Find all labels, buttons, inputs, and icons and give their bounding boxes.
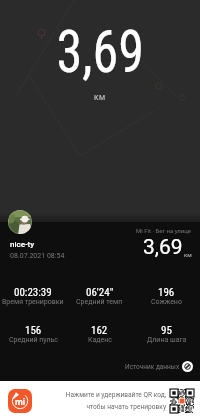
staticText: Длина шага [147, 336, 187, 344]
button[interactable]: 95 [133, 324, 200, 345]
staticText: 08.07.2021 08:54 [10, 252, 65, 260]
staticText: КМ [94, 94, 106, 102]
staticText: 3,69 [143, 235, 183, 260]
staticText: mi [15, 396, 26, 407]
button[interactable]: QR code [170, 389, 194, 413]
staticText: Сожжено [151, 298, 182, 306]
staticText: 00:23:39 [14, 286, 52, 299]
staticText: 95 [161, 324, 172, 337]
staticText: Время тренировки [2, 298, 64, 306]
button[interactable]: 162 [66, 324, 133, 345]
button[interactable]: Profile photo [8, 210, 32, 234]
staticText: Средний пульс [9, 336, 58, 344]
button[interactable]: 196 [133, 286, 200, 307]
staticText: 156 [25, 324, 42, 337]
button[interactable]: 00:23:39 [0, 286, 66, 307]
staticText: Средний темп [76, 298, 123, 306]
staticText: км [184, 251, 192, 258]
staticText: 162 [91, 324, 108, 337]
button[interactable]: 156 [0, 324, 66, 345]
button[interactable]: Mi Fit app [8, 389, 32, 413]
staticText: 196 [158, 286, 175, 299]
button[interactable]: 06'24" [66, 286, 133, 307]
staticText: Нажмите и удерживайте QR код, чтобы нача… [32, 391, 166, 411]
staticText: Mi Fit · Бег на улице [136, 227, 192, 234]
staticText: Источник данных [125, 363, 180, 371]
staticText: nice-ty [10, 240, 35, 249]
button[interactable]: Data source [182, 361, 193, 372]
staticText: 3,69 [57, 16, 144, 86]
staticText: Каденс [88, 336, 112, 344]
staticText: 06'24" [86, 286, 114, 299]
button[interactable]: Mi Fit app [0, 381, 200, 420]
